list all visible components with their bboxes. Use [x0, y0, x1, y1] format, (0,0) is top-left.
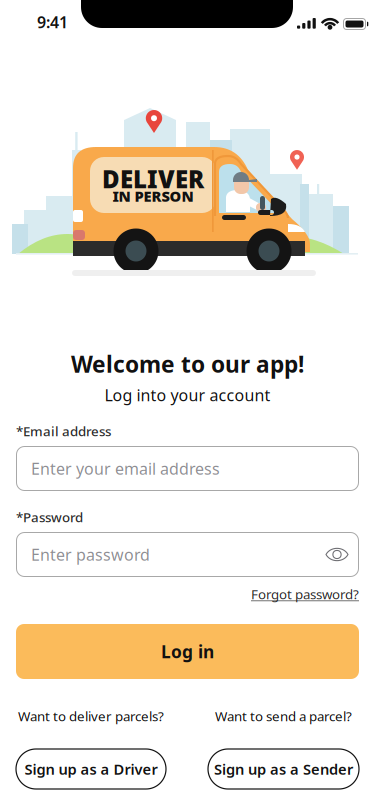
staticText: Want to deliver parcels? — [18, 707, 164, 725]
staticText: 9:41 — [37, 11, 68, 33]
staticText: Enter password — [31, 544, 150, 565]
button[interactable]: Show password — [315, 532, 359, 577]
staticText: Sign up as a Sender — [214, 759, 353, 779]
staticText: *Password — [16, 508, 83, 526]
staticText: Sign up as a Driver — [24, 759, 157, 779]
button[interactable]: Sign up as a Sender — [208, 749, 359, 789]
button[interactable]: Sign up as a Driver — [16, 749, 166, 789]
button[interactable]: Log in — [16, 624, 359, 679]
staticText: *Email address — [16, 422, 111, 440]
staticText: Want to send a parcel? — [215, 707, 352, 725]
staticText: Log in — [161, 640, 214, 663]
staticText: Forgot password? — [251, 585, 359, 603]
staticText: DELIVER — [102, 163, 204, 195]
staticText: Log into your account — [104, 384, 270, 406]
button[interactable]: Forgot password? — [251, 585, 359, 603]
staticText: Enter your email address — [31, 458, 220, 479]
staticText: Welcome to our app! — [71, 349, 304, 379]
staticText: IN PERSON — [112, 186, 193, 206]
